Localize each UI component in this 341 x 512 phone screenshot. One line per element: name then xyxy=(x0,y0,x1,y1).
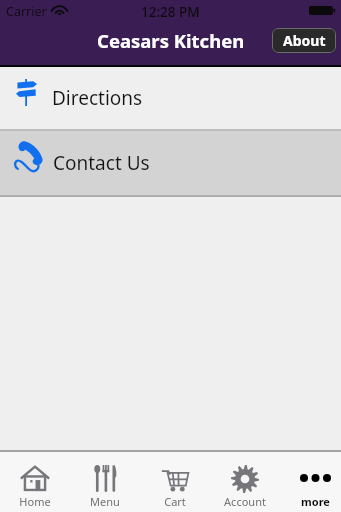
button[interactable]: Cart xyxy=(140,452,210,512)
button[interactable]: Home xyxy=(0,452,70,512)
button[interactable]: Contact Us xyxy=(0,131,341,195)
staticText: Cart xyxy=(164,494,186,509)
staticText: Account xyxy=(224,494,266,509)
staticText: Home xyxy=(19,494,51,509)
staticText: Carrier xyxy=(6,3,47,20)
button[interactable]: Directions xyxy=(0,67,341,129)
staticText: Ceasars Kitchen xyxy=(97,28,245,53)
staticText: more xyxy=(301,494,330,509)
button[interactable]: Menu xyxy=(70,452,140,512)
staticText: 12:28 PM xyxy=(141,3,200,21)
staticText: Directions xyxy=(52,85,143,111)
staticText: Contact Us xyxy=(53,150,150,176)
button[interactable]: Account xyxy=(210,452,280,512)
staticText: Menu xyxy=(90,494,120,509)
button[interactable]: About xyxy=(272,28,336,53)
button[interactable]: more xyxy=(280,452,341,512)
staticText: About xyxy=(283,31,326,50)
